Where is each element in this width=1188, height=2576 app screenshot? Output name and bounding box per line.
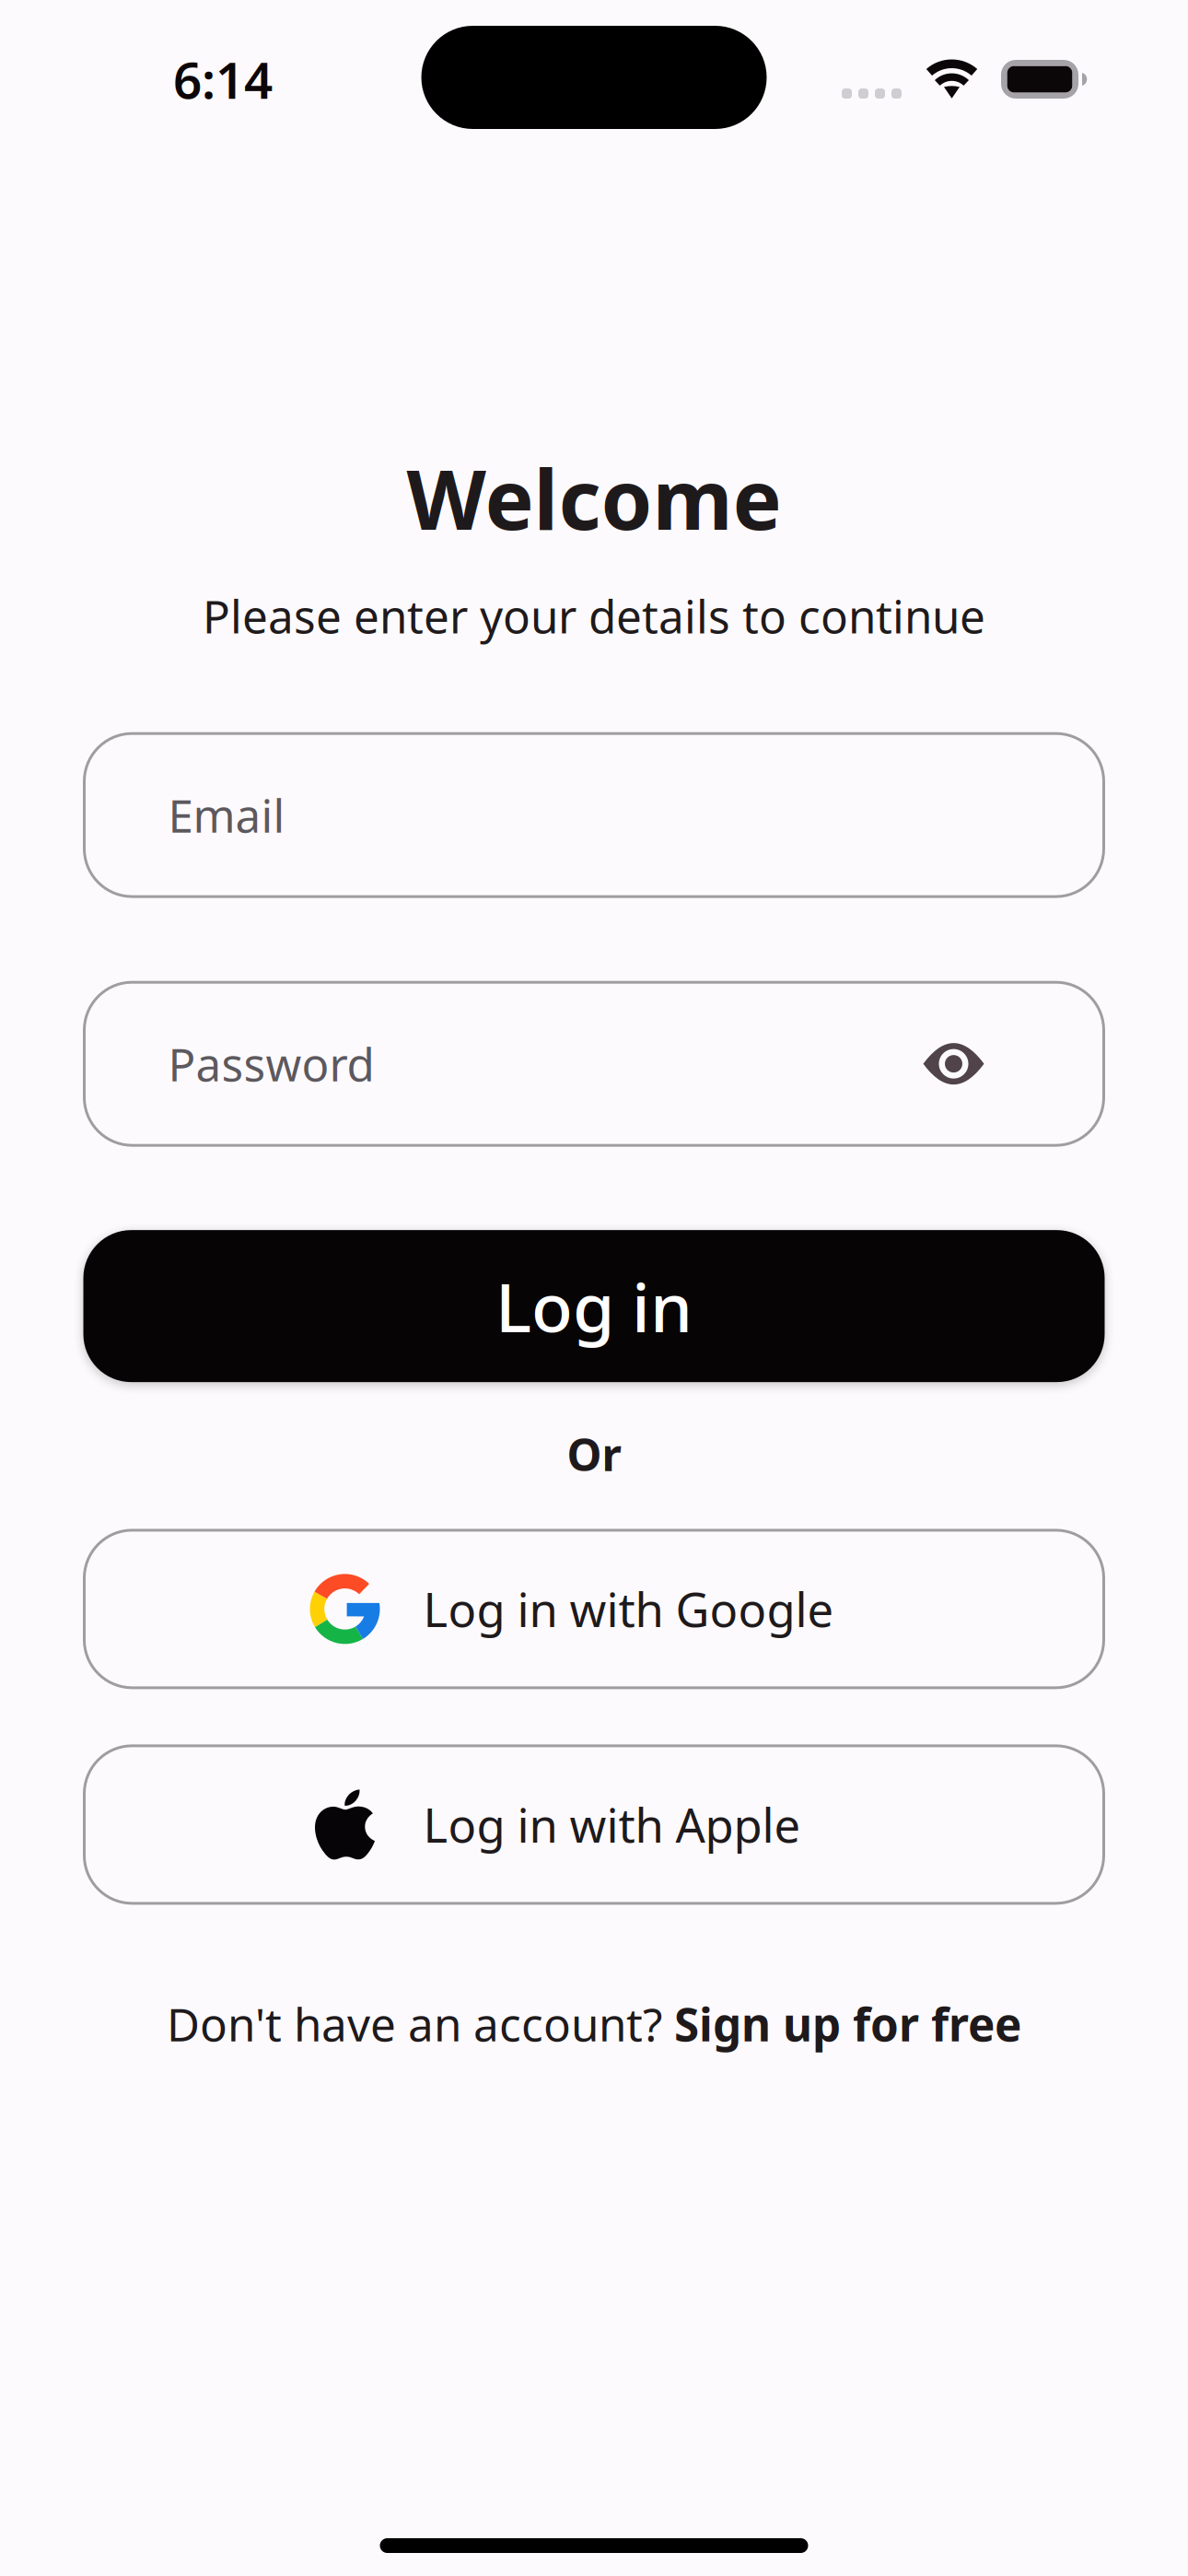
- button[interactable]: Log in with Google: [84, 1530, 1104, 1688]
- staticText: Log in: [495, 1261, 693, 1351]
- button[interactable]: Don't have an account?: [167, 1994, 1021, 2054]
- button[interactable]: Show password: [903, 1013, 1004, 1114]
- staticText: 6:14: [173, 46, 273, 113]
- staticText: Sign up for free: [674, 1994, 1021, 2054]
- button[interactable]: Log in: [83, 1230, 1105, 1382]
- staticText: Log in with Apple: [423, 1794, 801, 1856]
- staticText: Log in with Google: [423, 1578, 834, 1640]
- staticText: Or: [567, 1424, 621, 1483]
- button[interactable]: Log in with Apple: [84, 1746, 1104, 1903]
- staticText: Please enter your details to continue: [203, 586, 985, 646]
- staticText: Welcome: [407, 443, 781, 552]
- staticText: Password: [168, 1034, 374, 1094]
- staticText: Email: [168, 785, 285, 845]
- staticText: Don't have an account?: [167, 1994, 674, 2054]
